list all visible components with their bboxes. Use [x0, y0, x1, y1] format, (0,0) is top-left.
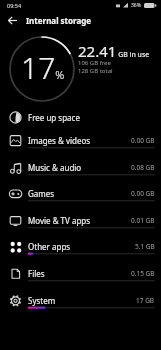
staticText: 0.15 GB [131, 269, 155, 278]
staticText: 22.41 GB in use [78, 41, 150, 61]
button[interactable]: System [0, 287, 161, 314]
staticText: System [28, 295, 56, 306]
staticText: Movie & TV apps [28, 215, 91, 226]
staticText: Images & videos [28, 135, 91, 146]
button[interactable]: Other apps [0, 233, 161, 260]
staticText: Internal storage [26, 15, 92, 26]
staticText: Games [28, 188, 55, 199]
staticText: 5.1 GB [135, 242, 155, 251]
staticText: 09:54 [7, 2, 22, 9]
staticText: Music & audio [28, 162, 82, 173]
staticText: Free up space [28, 112, 80, 123]
staticText: 0.00 GB [131, 189, 155, 198]
staticText: Other apps [28, 241, 71, 252]
button[interactable] [0, 11, 24, 30]
staticText: 128 GB total [78, 67, 113, 75]
staticText: 17 GB [136, 296, 155, 305]
button[interactable]: Music & audio [0, 154, 161, 181]
staticText: Files [28, 268, 45, 279]
staticText: 0.01 GB [131, 216, 155, 225]
staticText: 106 GB free [78, 59, 111, 67]
button[interactable]: Free up space [0, 104, 161, 130]
staticText: 0.08 GB [131, 163, 155, 172]
button[interactable]: Games [0, 180, 161, 207]
button[interactable]: Files [0, 260, 161, 287]
button[interactable]: Movie & TV apps [0, 207, 161, 234]
button[interactable]: Images & videos [0, 127, 161, 154]
staticText: 17% [21, 47, 65, 88]
staticText: 0.00 GB [131, 136, 155, 145]
staticText: 36% [131, 2, 141, 9]
